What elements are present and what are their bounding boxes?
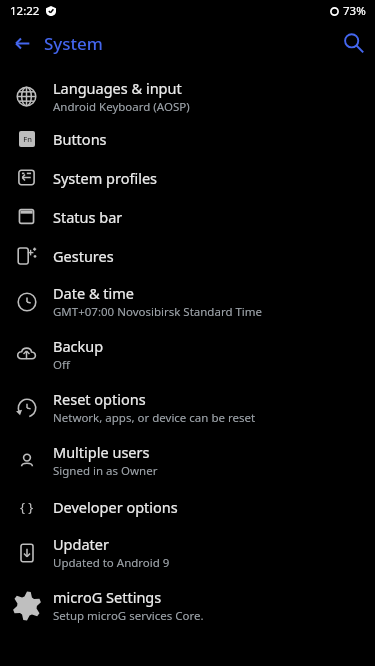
staticText: Multiple users [53, 442, 150, 462]
button[interactable]: Backup [0, 328, 375, 381]
button[interactable]: System profiles [0, 158, 375, 197]
staticText: System [44, 32, 103, 55]
staticText: { } [20, 498, 34, 516]
staticText: Developer options [53, 497, 178, 517]
staticText: Date & time [53, 283, 134, 303]
staticText: Backup [53, 336, 104, 356]
staticText: System profiles [53, 168, 158, 188]
staticText: microG Settings [53, 587, 162, 607]
button[interactable]: Multiple users [0, 434, 375, 487]
staticText: Signed in as Owner [53, 463, 158, 479]
staticText: Updated to Android 9 [53, 555, 170, 571]
staticText: Android Keyboard (AOSP) [53, 99, 190, 115]
button[interactable]: Back [0, 22, 44, 64]
staticText: Network, apps, or device can be reset [53, 410, 256, 426]
staticText: Fn [23, 134, 32, 144]
button[interactable]: microG Settings [0, 579, 375, 632]
staticText: Updater [53, 534, 109, 554]
staticText: Languages & input [53, 78, 182, 98]
staticText: Off [53, 357, 70, 373]
button[interactable]: Updater [0, 526, 375, 579]
button[interactable]: Gestures [0, 236, 375, 275]
staticText: GMT+07:00 Novosibirsk Standard Time [53, 304, 263, 320]
button[interactable]: Search [331, 22, 375, 64]
button[interactable]: Date & time [0, 275, 375, 328]
staticText: Reset options [53, 389, 146, 409]
button[interactable]: Status bar [0, 197, 375, 236]
button[interactable]: Fn [0, 119, 375, 158]
button[interactable]: Languages & input [0, 73, 375, 119]
staticText: Gestures [53, 246, 114, 266]
staticText: Buttons [53, 129, 107, 149]
button[interactable]: Reset options [0, 381, 375, 434]
staticText: Setup microG services Core. [53, 608, 204, 624]
button[interactable]: { } [0, 487, 375, 526]
staticText: 73% [343, 3, 366, 19]
staticText: 12:22 [10, 3, 40, 19]
staticText: Status bar [53, 207, 123, 227]
